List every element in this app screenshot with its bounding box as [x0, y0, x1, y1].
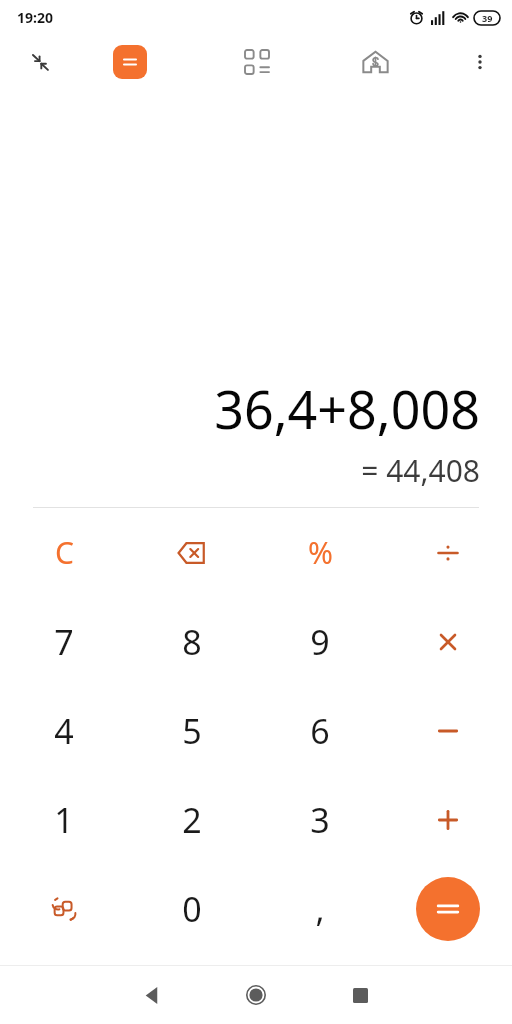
- button[interactable]: 1: [0, 775, 128, 864]
- staticText: 6: [310, 708, 330, 754]
- button[interactable]: 8: [128, 597, 256, 686]
- staticText: 9: [310, 619, 330, 665]
- button[interactable]: Recents: [331, 966, 389, 1024]
- staticText: 39: [482, 12, 493, 24]
- staticText: 36,4+8,008: [0, 373, 480, 444]
- staticText: 1: [54, 797, 74, 843]
- staticText: 19:20: [17, 8, 53, 27]
- button[interactable]: Mortgage: [352, 39, 398, 85]
- button[interactable]: Multiply: [384, 597, 512, 686]
- button[interactable]: Minus: [384, 686, 512, 775]
- button[interactable]: 5: [128, 686, 256, 775]
- button[interactable]: Convert: [0, 864, 128, 953]
- staticText: %: [308, 532, 333, 573]
- staticText: C: [55, 532, 74, 573]
- button[interactable]: 3: [256, 775, 384, 864]
- staticText: 3: [310, 797, 330, 843]
- staticText: 5: [182, 708, 202, 754]
- button[interactable]: 4: [0, 686, 128, 775]
- button[interactable]: Calculator: [113, 45, 147, 79]
- button[interactable]: Divide: [384, 508, 512, 597]
- button[interactable]: Back: [123, 966, 181, 1024]
- staticText: = 44,408: [0, 450, 480, 491]
- button[interactable]: Unit converter: [234, 39, 280, 85]
- button[interactable]: Collapse: [18, 40, 62, 84]
- button[interactable]: 9: [256, 597, 384, 686]
- button[interactable]: 6: [256, 686, 384, 775]
- staticText: 4: [54, 708, 74, 754]
- button[interactable]: Equals: [416, 877, 480, 941]
- staticText: 0: [182, 886, 202, 932]
- staticText: 2: [182, 797, 202, 843]
- button[interactable]: 0: [128, 864, 256, 953]
- button[interactable]: Backspace: [128, 508, 256, 597]
- staticText: ,: [315, 886, 325, 932]
- button[interactable]: %: [256, 508, 384, 597]
- button[interactable]: 7: [0, 597, 128, 686]
- button[interactable]: 2: [128, 775, 256, 864]
- button[interactable]: More options: [458, 40, 502, 84]
- staticText: 8: [182, 619, 202, 665]
- button[interactable]: Plus: [384, 775, 512, 864]
- button[interactable]: ,: [256, 864, 384, 953]
- button[interactable]: C: [0, 508, 128, 597]
- staticText: 7: [54, 619, 74, 665]
- button[interactable]: Home: [227, 966, 285, 1024]
